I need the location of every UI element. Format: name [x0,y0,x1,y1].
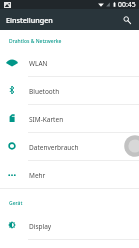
staticText: Datenverbrauch [29,143,79,152]
staticText: Bluetooth [29,87,60,96]
staticText: Gerät [9,200,23,207]
staticText: Einstellungen [6,15,53,25]
staticText: 00:45 [118,0,136,9]
staticText: WLAN [29,59,48,68]
button[interactable]: WLAN [0,49,139,77]
staticText: Drahtlos & Netzwerke [9,38,62,45]
button[interactable]: Datenverbrauch [0,133,139,161]
staticText: Mehr [29,171,46,180]
button[interactable]: SIM-Karten [0,105,139,133]
button[interactable]: Bluetooth [0,77,139,105]
staticText: SIM-Karten [29,115,64,124]
button[interactable]: Mehr [0,161,139,188]
staticText: Display [29,222,52,231]
button[interactable]: Search [116,9,137,30]
button[interactable]: Display [0,212,139,240]
